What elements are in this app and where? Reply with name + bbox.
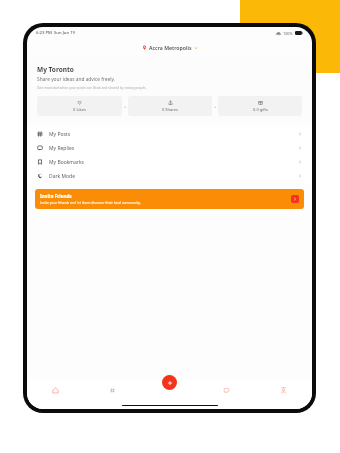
- staticText: 0.0 gifts: [253, 107, 268, 112]
- button[interactable]: 0 Shares: [128, 96, 212, 116]
- button[interactable]: Accra Metropolis: [136, 42, 204, 53]
- staticText: +: [124, 104, 127, 109]
- button[interactable]: My Posts: [27, 127, 312, 141]
- staticText: Share your ideas and advice freely.: [37, 76, 115, 83]
- button[interactable]: 0.0 gifts: [218, 96, 302, 116]
- button[interactable]: Messages: [198, 379, 255, 401]
- staticText: 100%: [283, 31, 293, 36]
- staticText: My Bookmarks: [49, 159, 84, 166]
- staticText: 6:23 PM Sun Jun 19: [36, 30, 75, 36]
- button[interactable]: Profile: [255, 379, 312, 401]
- staticText: 0 Likes: [73, 107, 86, 112]
- button[interactable]: Dark Mode: [27, 169, 312, 183]
- button[interactable]: Create post: [162, 375, 177, 390]
- staticText: Invite Friends: [40, 193, 72, 199]
- button[interactable]: Home: [27, 379, 84, 401]
- staticText: Dark Mode: [49, 173, 75, 180]
- staticText: Invite your friends and let them discove…: [40, 200, 141, 205]
- staticText: My Toronto: [37, 65, 74, 74]
- button[interactable]: Invite Friends: [35, 189, 304, 209]
- button[interactable]: Explore: [84, 379, 141, 401]
- staticText: My Posts: [49, 131, 71, 138]
- staticText: Accra Metropolis: [149, 44, 192, 51]
- staticText: 0 Shares: [162, 107, 178, 112]
- button[interactable]: My Bookmarks: [27, 155, 312, 169]
- other: Open invite: [291, 195, 299, 203]
- button[interactable]: 0 Likes: [37, 96, 122, 116]
- button[interactable]: My Replies: [27, 141, 312, 155]
- staticText: My Replies: [49, 145, 75, 152]
- staticText: +: [214, 104, 217, 109]
- staticText: Get rewarded when your posts are liked a…: [37, 85, 147, 90]
